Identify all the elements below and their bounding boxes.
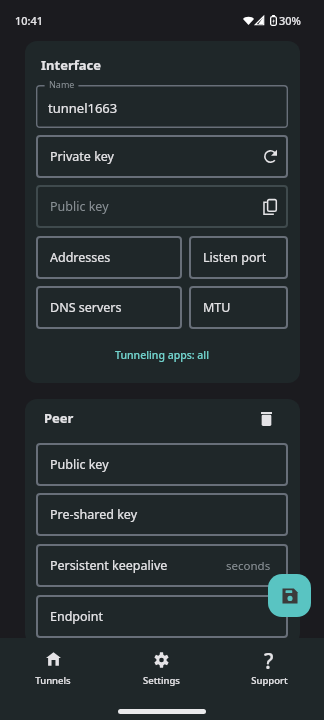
button[interactable]: Name	[36, 85, 288, 128]
button[interactable]: Tunnels	[0, 638, 107, 698]
button[interactable]: Public key	[36, 185, 288, 228]
button[interactable]: DNS servers	[36, 286, 182, 329]
button[interactable]: Persistent keepalive	[36, 544, 288, 587]
staticText: Name	[49, 78, 75, 90]
button[interactable]: Settings	[107, 638, 215, 698]
staticText: Public key	[50, 198, 109, 215]
staticText: Public key	[50, 456, 109, 473]
button[interactable]: Pre-shared key	[36, 493, 288, 536]
staticText: Endpoint	[50, 608, 104, 625]
staticText: Tunneling apps: all	[115, 348, 210, 362]
staticText: MTU	[203, 299, 231, 316]
button[interactable]: ?	[215, 638, 323, 698]
button[interactable]: Delete peer	[255, 407, 277, 431]
staticText: Private key	[50, 148, 114, 165]
button[interactable]: Save	[268, 574, 311, 617]
button[interactable]: MTU	[189, 286, 288, 329]
button[interactable]: Public key	[36, 443, 288, 486]
staticText: tunnel1663	[48, 99, 118, 117]
button[interactable]: Listen port	[189, 236, 288, 279]
staticText: Peer	[44, 409, 74, 427]
button[interactable]: Private key	[36, 135, 288, 178]
staticText: Listen port	[203, 249, 267, 266]
staticText: ?	[264, 647, 274, 676]
staticText: 30%	[279, 13, 301, 28]
button[interactable]: Tunneling apps: all	[110, 344, 214, 366]
staticText: Interface	[41, 56, 102, 74]
staticText: Tunnels	[35, 674, 71, 687]
staticText: seconds	[226, 558, 271, 574]
button[interactable]: Endpoint	[36, 595, 288, 638]
staticText: 10:41	[15, 13, 44, 28]
staticText: Pre-shared key	[50, 506, 138, 523]
button[interactable]: Addresses	[36, 236, 182, 279]
staticText: Addresses	[50, 249, 111, 266]
staticText: Persistent keepalive	[50, 557, 168, 574]
staticText: Settings	[143, 674, 180, 687]
staticText: Support	[251, 674, 288, 687]
staticText: DNS servers	[50, 299, 122, 316]
